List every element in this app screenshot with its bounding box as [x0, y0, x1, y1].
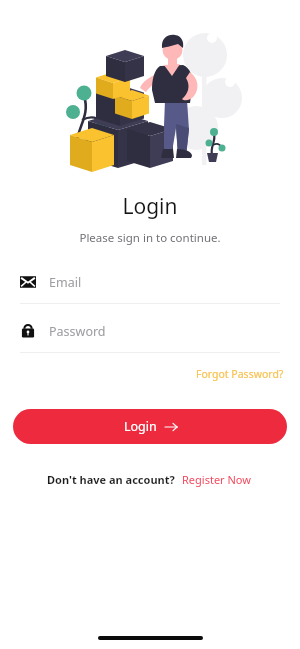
- button[interactable]: Email: [0, 269, 300, 304]
- staticText: Login: [124, 418, 157, 435]
- staticText: Register Now: [182, 472, 251, 487]
- button[interactable]: Login: [13, 409, 287, 444]
- staticText: Password: [49, 323, 106, 340]
- staticText: Login: [0, 192, 300, 221]
- button[interactable]: Password: [0, 318, 300, 353]
- other: Email: [20, 274, 36, 290]
- button[interactable]: Register Now: [180, 470, 253, 489]
- other: Password: [20, 323, 36, 339]
- staticText: Don't have an account?: [47, 472, 175, 487]
- staticText: Please sign in to continue.: [0, 230, 300, 246]
- button[interactable]: Forgot Password?: [194, 365, 286, 383]
- staticText: Email: [49, 274, 82, 291]
- staticText: Forgot Password?: [196, 367, 284, 381]
